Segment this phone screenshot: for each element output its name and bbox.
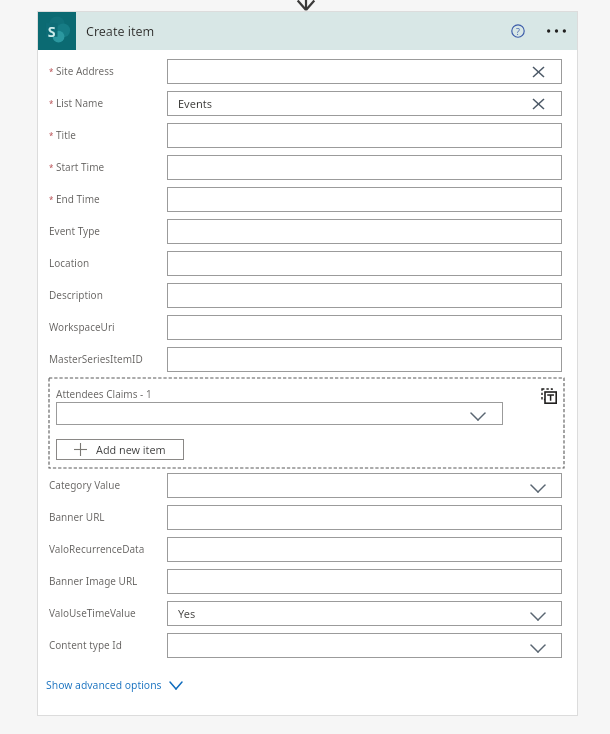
button[interactable]: Clear Site Address (167, 59, 562, 84)
staticText: WorkspaceUri (49, 320, 115, 334)
button[interactable]: Clear Site Address (527, 60, 550, 83)
button[interactable]: Events (167, 91, 562, 116)
button[interactable]: Open Attendees Claims list (56, 402, 503, 425)
button[interactable] (167, 187, 562, 212)
button[interactable] (167, 283, 562, 308)
staticText: * (49, 130, 54, 141)
staticText: Events (178, 96, 212, 111)
button[interactable]: Open Content type Id list (526, 634, 549, 657)
button[interactable]: Open Content type Id list (167, 633, 562, 658)
staticText: Show advanced options (46, 678, 162, 692)
staticText: Title (56, 128, 76, 142)
button[interactable] (167, 123, 562, 148)
button[interactable] (167, 537, 562, 562)
staticText: Category Value (49, 478, 121, 492)
button[interactable] (167, 219, 562, 244)
staticText: MasterSeriesItemID (49, 352, 143, 366)
button[interactable] (167, 569, 562, 594)
staticText: S (48, 23, 56, 41)
staticText: Banner URL (49, 510, 105, 524)
staticText: List Name (56, 96, 104, 110)
button[interactable]: Open ValoUseTimeValue list (526, 602, 549, 625)
button[interactable]: Open Attendees Claims list (467, 403, 488, 424)
staticText: Add new item (96, 442, 166, 457)
staticText: Attendees Claims - 1 (56, 387, 152, 401)
staticText: Banner Image URL (49, 574, 138, 588)
staticText: Event Type (49, 224, 100, 238)
staticText: ? (516, 25, 520, 37)
staticText: Yes (178, 606, 196, 621)
staticText: Site Address (56, 64, 114, 78)
staticText: Location (49, 256, 90, 270)
button[interactable]: Add new item (56, 439, 184, 460)
staticText: End Time (56, 192, 100, 206)
staticText: Content type Id (49, 638, 122, 652)
button[interactable] (167, 251, 562, 276)
button[interactable] (167, 505, 562, 530)
button[interactable]: Switch to text mode (541, 388, 557, 404)
button[interactable]: Help (505, 18, 531, 44)
button[interactable]: Open Category Value list (526, 474, 549, 497)
staticText: * (49, 162, 54, 173)
staticText: Start Time (56, 160, 105, 174)
staticText: ValoUseTimeValue (49, 606, 136, 620)
staticText: ValoRecurrenceData (49, 542, 145, 556)
staticText: * (49, 194, 54, 205)
button[interactable]: Open Category Value list (167, 473, 562, 498)
button[interactable]: More options (542, 16, 571, 45)
button[interactable] (167, 347, 562, 372)
button[interactable]: Clear List Name (527, 92, 550, 115)
button[interactable]: Show advanced options (46, 675, 182, 695)
staticText: Create item (86, 23, 155, 40)
staticText: Description (49, 288, 103, 302)
button[interactable] (167, 315, 562, 340)
staticText: * (49, 98, 54, 109)
button[interactable] (167, 155, 562, 180)
button[interactable]: Yes (167, 601, 562, 626)
staticText: * (49, 66, 54, 77)
